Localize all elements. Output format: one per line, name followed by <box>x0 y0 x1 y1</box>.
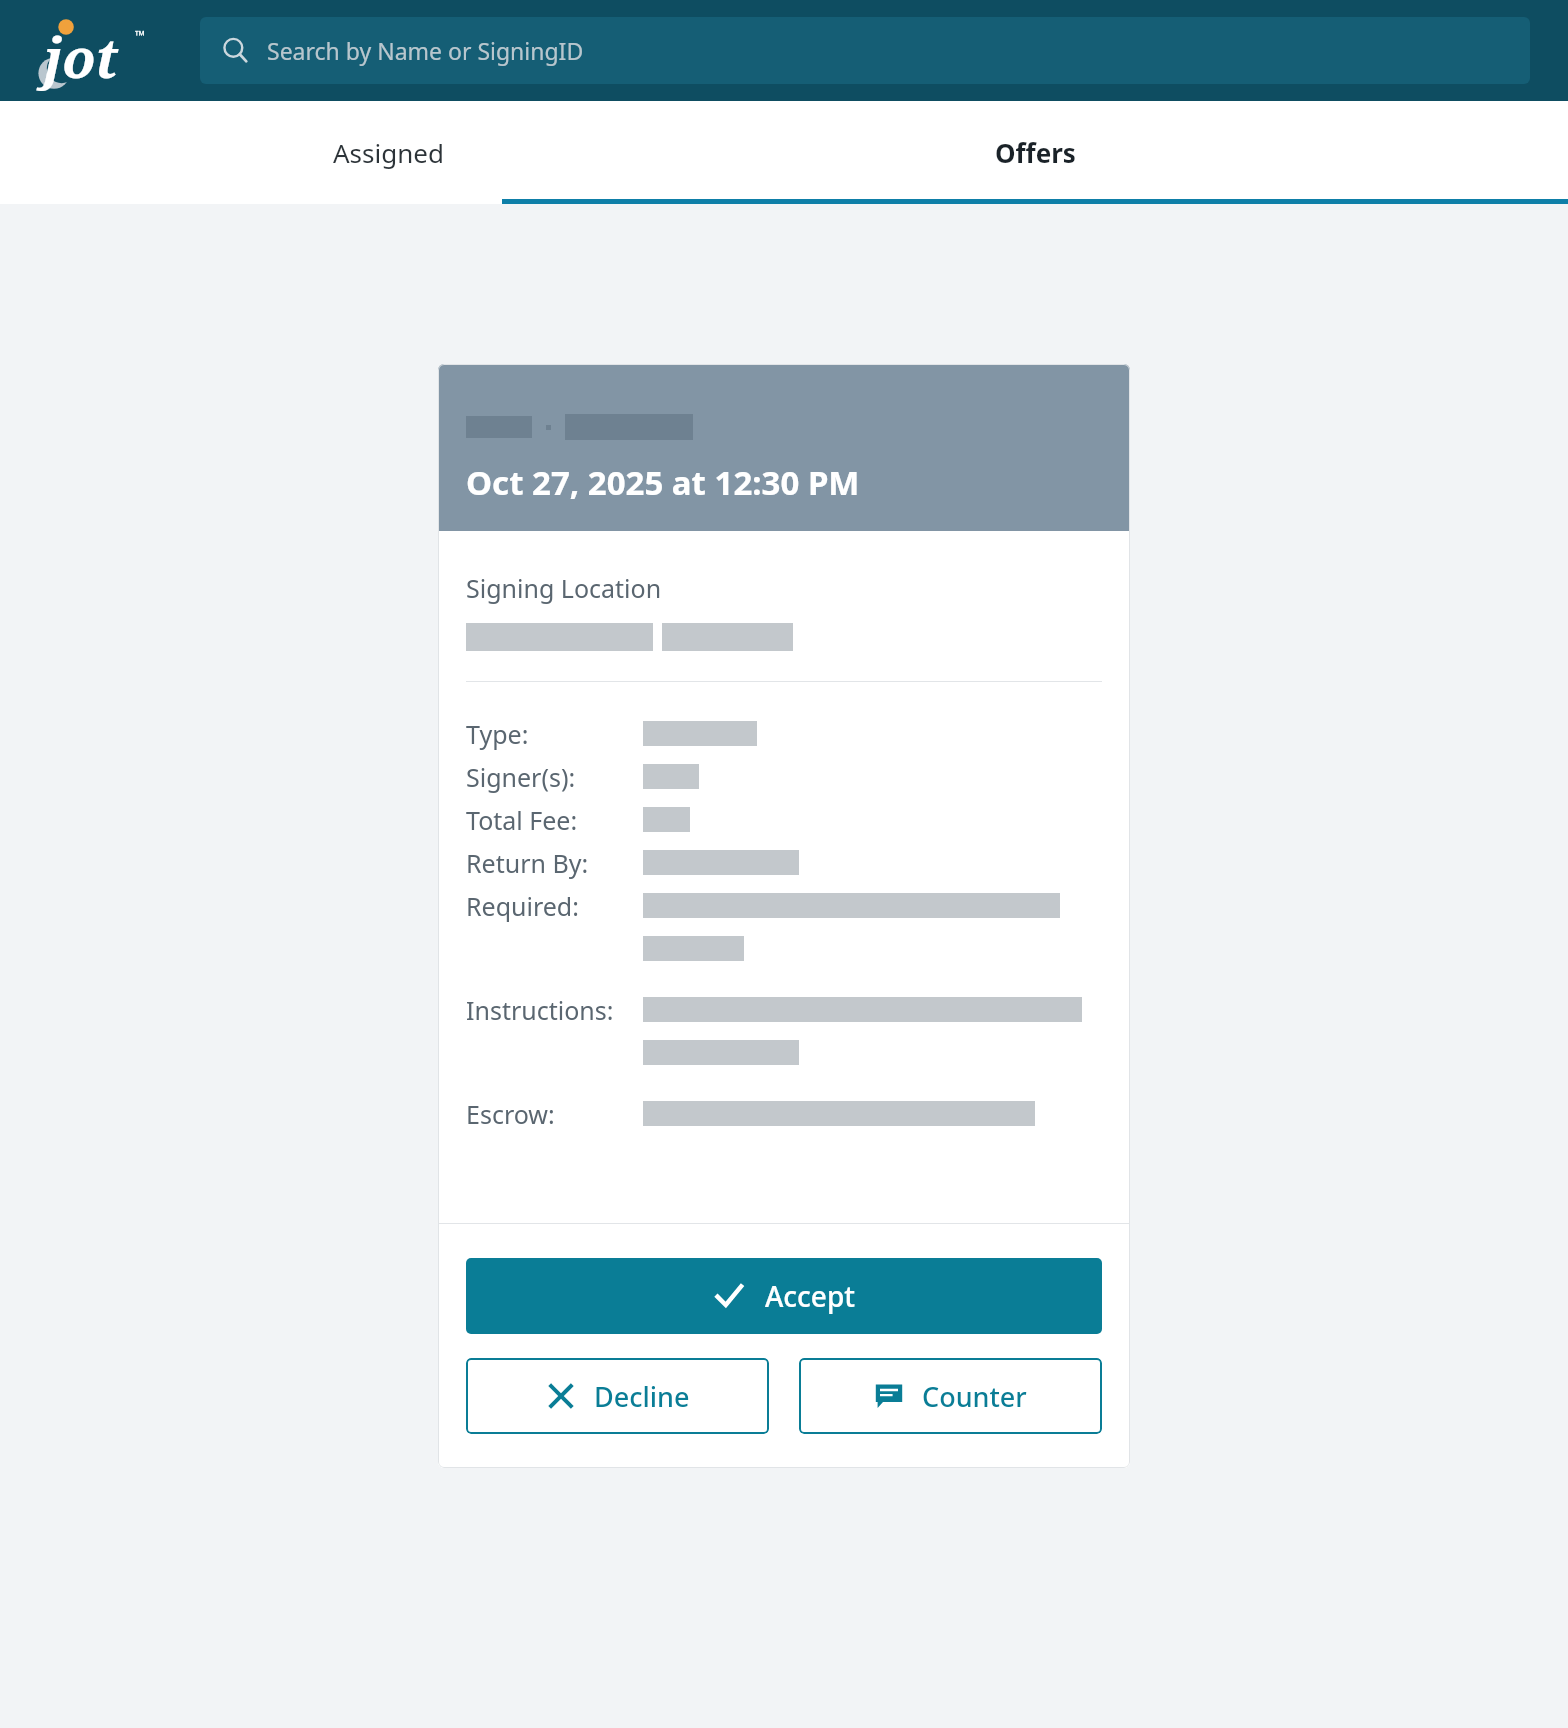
button[interactable]: Accept <box>466 1258 1102 1334</box>
button[interactable]: Decline <box>466 1358 769 1434</box>
staticText: Accept <box>765 1277 855 1315</box>
staticText: Signing Location <box>466 571 662 605</box>
staticText: Assigned <box>333 135 444 170</box>
staticText: Total Fee: <box>466 803 578 837</box>
staticText: Oct 27, 2025 at 12:30 PM <box>466 460 860 505</box>
staticText: Decline <box>594 1378 690 1415</box>
staticText: ™ <box>135 26 146 44</box>
staticText: Offers <box>995 135 1076 170</box>
staticText: Return By: <box>466 846 589 880</box>
staticText: Escrow: <box>466 1097 555 1131</box>
button[interactable]: Jot home <box>38 14 148 88</box>
staticText: Signer(s): <box>466 760 576 794</box>
staticText: Search by Name or SigningID <box>267 35 584 66</box>
staticText: jot <box>44 20 119 94</box>
button[interactable]: Offers <box>502 101 1568 204</box>
staticText: Instructions: <box>466 993 614 1027</box>
button[interactable]: Search by Name or SigningID <box>200 17 1530 84</box>
staticText: Type: <box>466 717 529 751</box>
staticText: Counter <box>922 1378 1027 1415</box>
staticText: Required: <box>466 889 579 923</box>
button[interactable]: Assigned <box>333 101 444 204</box>
button[interactable]: Counter <box>799 1358 1102 1434</box>
